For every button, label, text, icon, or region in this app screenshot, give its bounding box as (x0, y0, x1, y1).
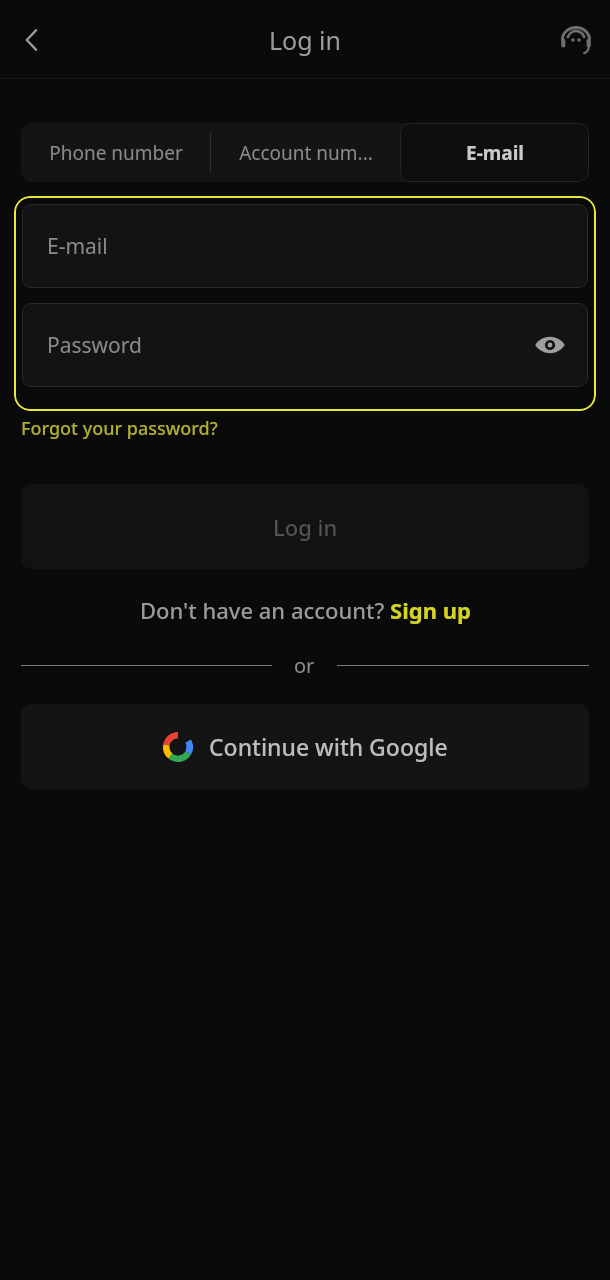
button[interactable]: Phone number (21, 123, 210, 182)
button[interactable]: Log in (21, 484, 589, 569)
button[interactable]: Account num... (211, 123, 400, 182)
staticText: Account num... (239, 140, 373, 166)
button[interactable]: Continue with Google (21, 704, 589, 789)
staticText: Phone number (49, 140, 183, 166)
staticText: or (294, 652, 315, 679)
staticText: Log in (269, 23, 342, 57)
staticText: Log in (273, 512, 338, 542)
staticText: E-mail (47, 232, 108, 261)
button[interactable]: Forgot your password? (21, 414, 218, 443)
staticText: Password (47, 331, 142, 360)
button[interactable]: Don't have an account? Sign up (132, 591, 479, 629)
button[interactable]: Password (22, 303, 588, 387)
staticText: E-mail (466, 140, 524, 166)
button[interactable]: Show password (528, 323, 572, 367)
staticText: Continue with Google (209, 731, 448, 762)
button[interactable]: E-mail (400, 123, 589, 182)
button[interactable]: E-mail (22, 204, 588, 288)
staticText: Don't have an account? Sign up (140, 595, 471, 625)
button[interactable]: Support (550, 14, 602, 66)
button[interactable]: Back (6, 14, 58, 66)
